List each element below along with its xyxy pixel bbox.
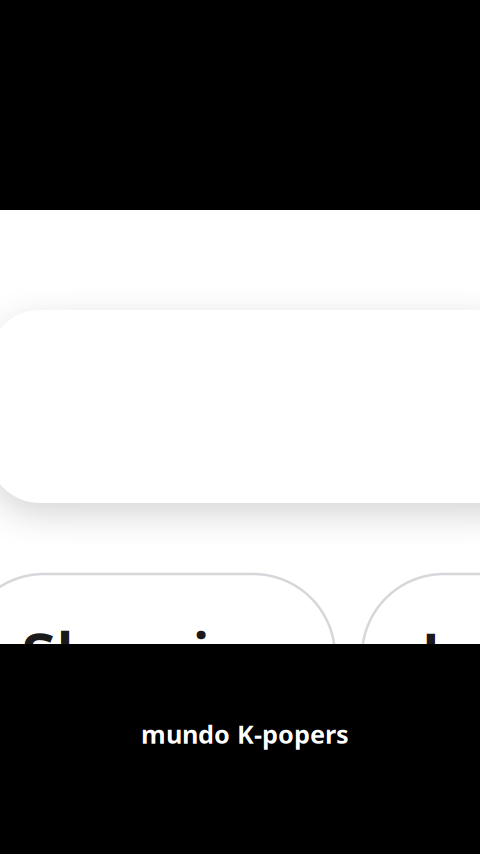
staticText: Shorri: [21, 611, 210, 696]
button[interactable]: Lugar: [362, 574, 480, 738]
staticText: mundo K-popers: [141, 717, 349, 751]
staticText: Lugar: [421, 611, 480, 696]
button[interactable]: Shorri: [0, 574, 335, 738]
